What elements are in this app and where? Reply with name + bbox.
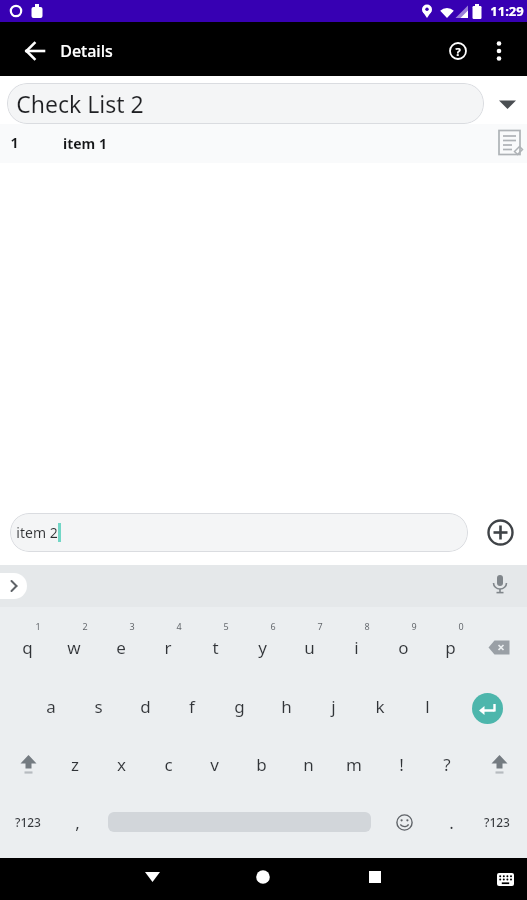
- staticText: u: [304, 636, 315, 659]
- button[interactable]: [477, 630, 521, 664]
- button[interactable]: 1: [0, 124, 527, 163]
- staticText: z: [71, 753, 79, 776]
- staticText: c: [164, 753, 173, 776]
- button[interactable]: o: [383, 630, 423, 664]
- staticText: Details: [60, 40, 113, 62]
- staticText: b: [256, 753, 267, 776]
- staticText: j: [331, 695, 336, 718]
- staticText: ?123: [484, 814, 510, 830]
- staticText: m: [346, 753, 362, 776]
- button[interactable]: item 2: [10, 513, 468, 552]
- staticText: 2: [82, 620, 88, 632]
- staticText: x: [117, 753, 126, 776]
- staticText: ?: [455, 44, 461, 59]
- staticText: t: [212, 636, 219, 659]
- button[interactable]: ?123: [475, 805, 519, 839]
- button[interactable]: y: [242, 630, 282, 664]
- button[interactable]: [239, 857, 287, 897]
- button[interactable]: [496, 128, 524, 158]
- button[interactable]: s: [78, 689, 118, 723]
- button[interactable]: z: [55, 747, 95, 781]
- staticText: 3: [129, 620, 135, 632]
- button[interactable]: t: [195, 630, 235, 664]
- button[interactable]: k: [360, 689, 400, 723]
- button[interactable]: [351, 857, 399, 897]
- button[interactable]: d: [125, 689, 165, 723]
- button[interactable]: [480, 512, 520, 552]
- staticText: v: [210, 753, 219, 776]
- staticText: g: [234, 695, 245, 718]
- staticText: 1: [35, 620, 41, 632]
- button[interactable]: [15, 31, 55, 71]
- button[interactable]: c: [148, 747, 188, 781]
- staticText: 9: [411, 620, 417, 632]
- staticText: 7: [317, 620, 323, 632]
- staticText: 8: [364, 620, 370, 632]
- button[interactable]: ,: [57, 805, 97, 839]
- staticText: !: [399, 753, 404, 776]
- staticText: 4: [176, 620, 182, 632]
- staticText: p: [445, 636, 456, 659]
- button[interactable]: a: [31, 689, 71, 723]
- staticText: w: [67, 636, 81, 659]
- button[interactable]: g: [219, 689, 259, 723]
- button[interactable]: [467, 688, 507, 728]
- button[interactable]: m: [334, 747, 374, 781]
- button[interactable]: q: [7, 630, 47, 664]
- staticText: f: [189, 695, 195, 718]
- button[interactable]: [6, 747, 50, 781]
- staticText: e: [116, 636, 126, 659]
- button[interactable]: j: [313, 689, 353, 723]
- button[interactable]: [128, 857, 176, 897]
- button[interactable]: b: [241, 747, 281, 781]
- staticText: ,: [75, 811, 80, 834]
- staticText: item 1: [63, 134, 107, 153]
- button[interactable]: .: [436, 805, 466, 839]
- staticText: .: [449, 811, 454, 834]
- staticText: s: [94, 695, 103, 718]
- staticText: 0: [458, 620, 464, 632]
- button[interactable]: ?: [438, 31, 478, 71]
- button[interactable]: i: [336, 630, 376, 664]
- staticText: y: [258, 636, 267, 659]
- staticText: 1: [10, 133, 19, 152]
- button[interactable]: r: [148, 630, 188, 664]
- button[interactable]: ?123: [6, 805, 50, 839]
- button[interactable]: [482, 567, 518, 603]
- button[interactable]: w: [54, 630, 94, 664]
- staticText: item 2: [16, 523, 58, 542]
- button[interactable]: f: [172, 689, 212, 723]
- staticText: d: [140, 695, 151, 718]
- button[interactable]: [384, 805, 424, 839]
- staticText: o: [398, 636, 409, 659]
- staticText: 6: [270, 620, 276, 632]
- button[interactable]: Check List 2: [7, 83, 484, 124]
- button[interactable]: [492, 89, 522, 119]
- button[interactable]: [485, 861, 525, 897]
- button[interactable]: [0, 573, 27, 599]
- button[interactable]: u: [289, 630, 329, 664]
- staticText: r: [164, 636, 172, 659]
- button[interactable]: p: [430, 630, 470, 664]
- button[interactable]: e: [101, 630, 141, 664]
- staticText: l: [425, 695, 430, 718]
- button[interactable]: ?: [427, 747, 467, 781]
- button[interactable]: l: [407, 689, 447, 723]
- staticText: h: [281, 695, 292, 718]
- button[interactable]: [477, 747, 521, 781]
- staticText: n: [303, 753, 314, 776]
- staticText: q: [22, 636, 33, 659]
- staticText: i: [354, 636, 359, 659]
- button[interactable]: n: [288, 747, 328, 781]
- button[interactable]: x: [101, 747, 141, 781]
- staticText: 11:29: [490, 2, 524, 20]
- staticText: ?: [443, 753, 451, 776]
- button[interactable]: !: [381, 747, 421, 781]
- button[interactable]: h: [266, 689, 306, 723]
- button[interactable]: v: [194, 747, 234, 781]
- staticText: k: [375, 695, 385, 718]
- staticText: 5: [223, 620, 229, 632]
- staticText: a: [46, 695, 56, 718]
- button[interactable]: [479, 31, 519, 71]
